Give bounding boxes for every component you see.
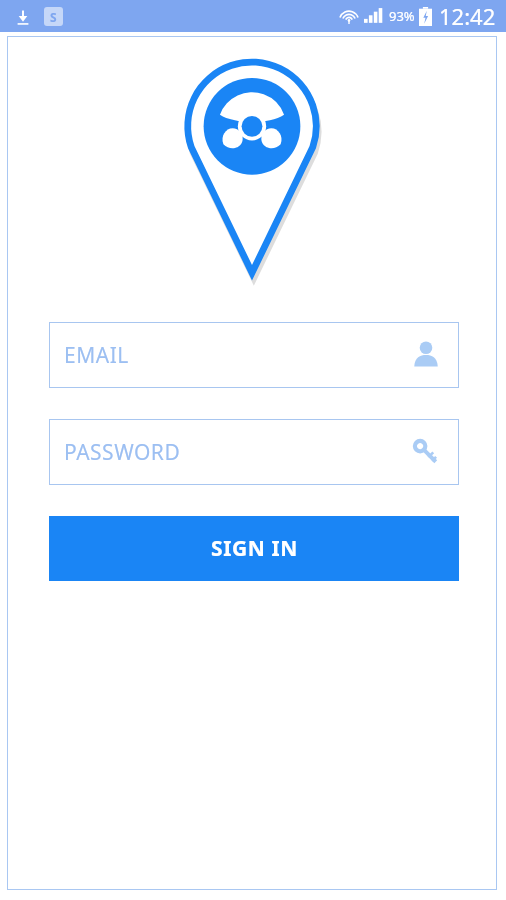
staticText: SIGN IN	[211, 534, 298, 563]
other: Password	[409, 435, 443, 469]
staticText: 12:42	[439, 1, 496, 31]
button[interactable]: EMAIL	[49, 322, 459, 388]
staticText: S	[50, 9, 57, 25]
staticText: EMAIL	[64, 341, 409, 370]
staticText: PASSWORD	[64, 438, 409, 467]
button[interactable]: SIGN IN	[49, 516, 459, 581]
staticText: 93%	[389, 7, 415, 25]
other: Email	[409, 338, 443, 372]
button[interactable]: PASSWORD	[49, 419, 459, 485]
